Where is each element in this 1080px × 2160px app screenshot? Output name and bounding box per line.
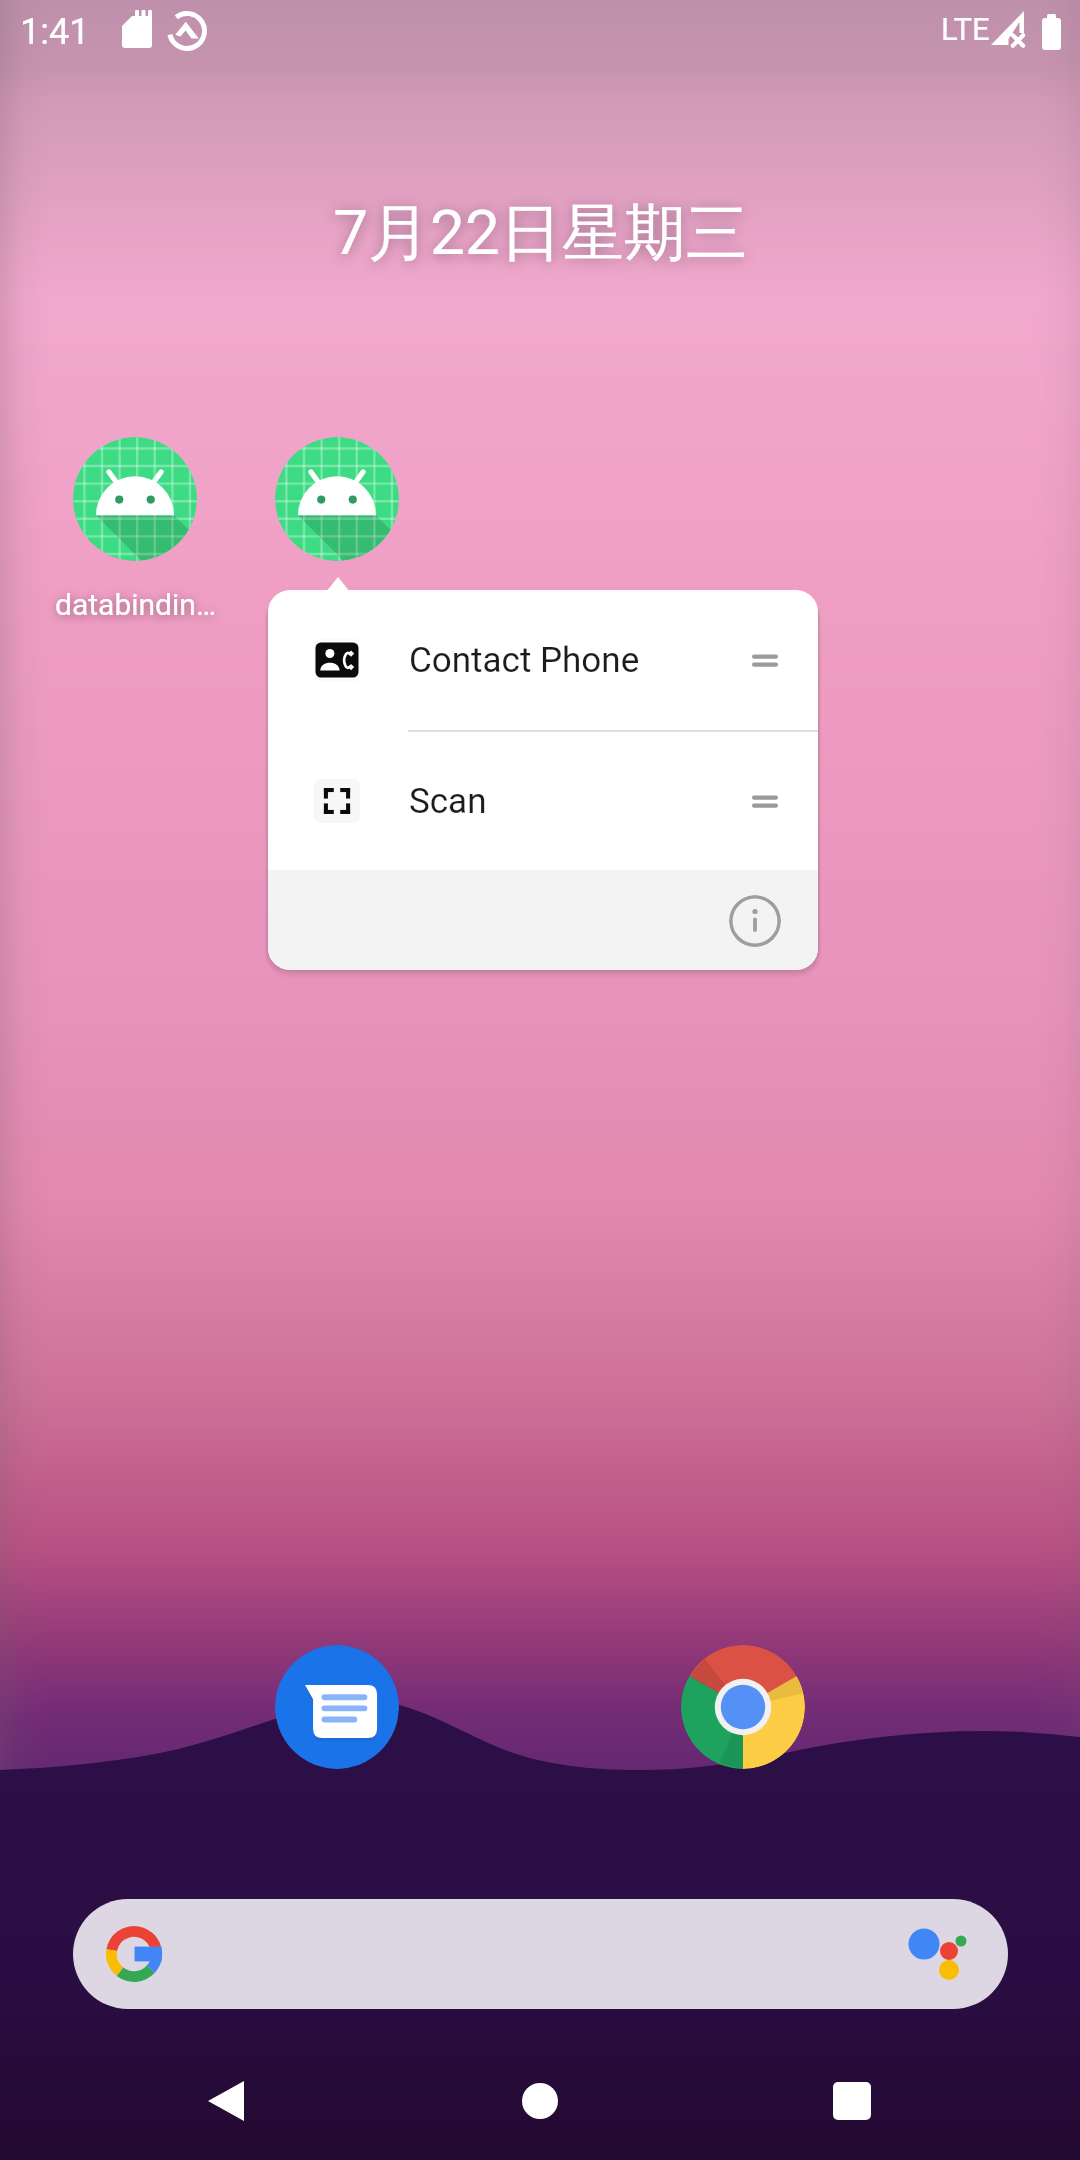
button[interactable]: app shortcut (275, 437, 399, 561)
button[interactable]: Recent apps (762, 2042, 942, 2160)
staticText: Scan (409, 781, 487, 822)
button[interactable]: Google search (73, 1899, 1008, 2009)
button[interactable]: Home (450, 2042, 630, 2160)
staticText: LTE (941, 11, 990, 47)
staticText: databindin… (55, 587, 216, 622)
button[interactable]: Chrome (681, 1645, 805, 1769)
button[interactable]: App info (729, 895, 781, 947)
staticText: 1:41 (20, 11, 90, 53)
button[interactable]: Back (136, 2042, 316, 2160)
button[interactable]: Messages (275, 1645, 399, 1769)
button[interactable]: Contact Phone (268, 590, 818, 730)
staticText: 7月22日星期三 (333, 194, 748, 272)
button[interactable]: Scan (268, 732, 818, 870)
staticText: Contact Phone (409, 640, 640, 681)
button[interactable]: databinding app (73, 437, 197, 561)
